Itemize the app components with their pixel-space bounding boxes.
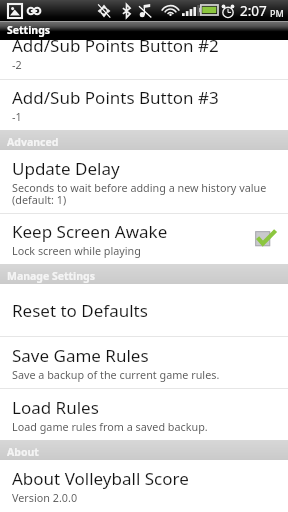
button[interactable]: Add/Sub Points Button #2 bbox=[0, 40, 288, 79]
staticText: Save Game Rules bbox=[12, 344, 149, 367]
button[interactable]: Manage Settings bbox=[0, 264, 288, 284]
button[interactable]: Load Rules bbox=[0, 389, 288, 440]
staticText: Add/Sub Points Button #3 bbox=[12, 86, 219, 109]
staticText: Manage Settings bbox=[7, 269, 95, 283]
staticText: Version 2.0.0 bbox=[12, 490, 78, 505]
staticText: Lock screen while playing bbox=[12, 243, 141, 258]
staticText: -2 bbox=[12, 57, 22, 72]
staticText: About Volleyball Score bbox=[12, 467, 189, 490]
button[interactable]: Add/Sub Points Button #3 bbox=[0, 80, 288, 130]
staticText: Update Delay bbox=[12, 157, 120, 180]
button[interactable]: Advanced bbox=[0, 130, 288, 150]
staticText: -1 bbox=[12, 109, 22, 124]
staticText: Settings bbox=[7, 23, 51, 37]
button[interactable]: Keep Screen Awake bbox=[0, 214, 288, 264]
staticText: Save a backup of the current game rules. bbox=[12, 367, 220, 382]
staticText: About bbox=[7, 445, 39, 459]
staticText: Reset to Defaults bbox=[12, 299, 148, 322]
button[interactable]: Update Delay bbox=[0, 150, 288, 213]
staticText: Load Rules bbox=[12, 396, 99, 419]
button[interactable]: About bbox=[0, 440, 288, 460]
button[interactable]: Keep Screen Awake checkbox bbox=[248, 222, 282, 256]
button[interactable]: Reset to Defaults bbox=[0, 284, 288, 336]
button[interactable]: Save Game Rules bbox=[0, 337, 288, 388]
staticText: Advanced bbox=[7, 135, 59, 149]
staticText: 2:07 bbox=[240, 2, 267, 20]
staticText: Seconds to wait before adding a new hist… bbox=[12, 180, 267, 207]
staticText: PM bbox=[270, 7, 284, 19]
staticText: Keep Screen Awake bbox=[12, 220, 168, 243]
button[interactable]: About Volleyball Score bbox=[0, 460, 288, 512]
staticText: Load game rules from a saved backup. bbox=[12, 419, 208, 434]
staticText: Add/Sub Points Button #2 bbox=[12, 40, 219, 57]
